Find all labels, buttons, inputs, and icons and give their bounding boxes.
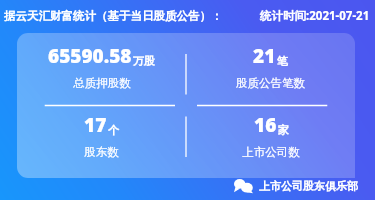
staticText: 统计时间:2021-07-21 <box>260 8 370 24</box>
button[interactable]: 65590.58 <box>48 43 155 90</box>
staticText: 笔 <box>277 54 288 68</box>
staticText: 总质押股数 <box>73 76 131 90</box>
staticText: 股东数 <box>84 145 119 159</box>
staticText: 16 <box>254 112 277 138</box>
button[interactable]: 21 <box>236 43 305 90</box>
button[interactable]: WeChat official account <box>234 179 358 193</box>
staticText: 股质公告笔数 <box>236 76 305 90</box>
other: WeChat official account <box>234 179 253 193</box>
staticText: 21 <box>253 43 276 69</box>
staticText: 据云天汇财富统计（基于当日股质公告）： <box>4 9 223 23</box>
staticText: 17 <box>84 112 107 138</box>
staticText: 上市公司股东俱乐部 <box>259 179 358 193</box>
button[interactable]: 16 <box>242 112 300 159</box>
staticText: 万股 <box>133 54 155 68</box>
staticText: 家 <box>278 123 289 137</box>
staticText: 65590.58 <box>48 43 132 69</box>
button[interactable]: 17 <box>84 112 119 159</box>
staticText: 个 <box>108 123 119 137</box>
staticText: 上市公司数 <box>242 145 300 159</box>
